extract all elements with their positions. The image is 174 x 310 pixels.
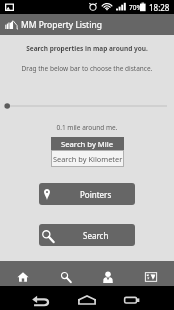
staticText: MM Property Listing xyxy=(21,19,102,31)
staticText: 70% xyxy=(129,3,142,12)
staticText: Search xyxy=(83,230,109,241)
button[interactable]: Pointers xyxy=(39,183,135,205)
button[interactable]: Search by Mile xyxy=(51,137,124,150)
button[interactable]: Profile xyxy=(88,261,128,286)
button[interactable]: Map xyxy=(131,261,171,286)
button[interactable]: Recents xyxy=(115,286,149,310)
staticText: Search properties in map around you. xyxy=(0,44,174,53)
button[interactable]: Home xyxy=(3,261,43,286)
button[interactable]: Home xyxy=(69,286,105,310)
staticText: 18:28 xyxy=(149,2,170,13)
staticText: 0.1 mile around me. xyxy=(0,123,174,132)
button[interactable]: Search xyxy=(46,261,86,286)
staticText: Search by Kilometer xyxy=(53,154,123,164)
button[interactable]: Search by Kilometer xyxy=(51,150,124,167)
staticText: Drag the below bar to choose the distanc… xyxy=(0,64,174,73)
staticText: Search by Mile xyxy=(61,139,114,149)
button[interactable]: Search xyxy=(39,224,135,246)
staticText: Pointers xyxy=(80,189,112,200)
button[interactable]: Back xyxy=(23,286,58,310)
